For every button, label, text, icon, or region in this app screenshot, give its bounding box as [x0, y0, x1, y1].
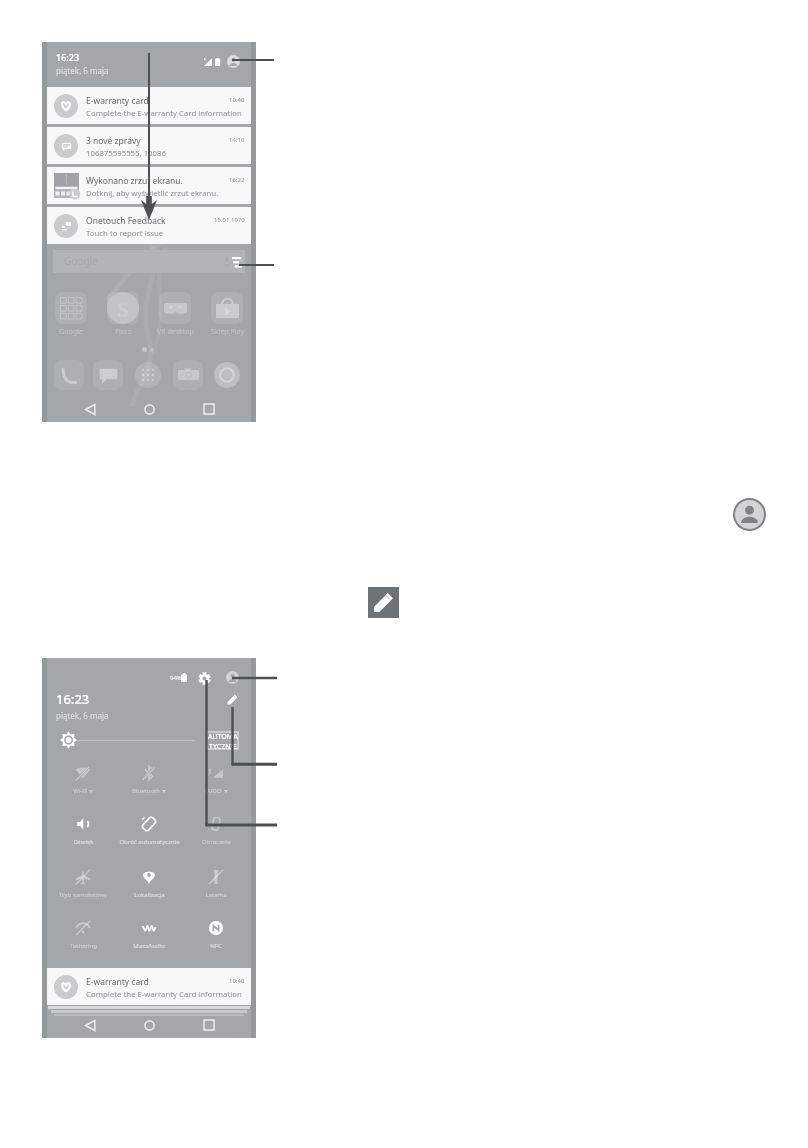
staticText: NFC [210, 942, 222, 950]
staticText: 3 nové zprávy [86, 135, 141, 147]
staticText: 16:22 [229, 176, 245, 184]
button[interactable]: AUTOMA [207, 732, 238, 749]
staticText: S [117, 293, 130, 323]
button[interactable]: Home [136, 1012, 162, 1038]
button[interactable]: S [97, 292, 149, 337]
button[interactable]: Dźwięk [50, 816, 116, 846]
button[interactable]: Lokalizacja [116, 869, 182, 899]
other: Menu [232, 257, 244, 268]
button[interactable]: Google [45, 292, 97, 337]
staticText: 16:23 [56, 51, 80, 63]
staticText: Dotknij, aby wyświetlić zrzut ekranu. [86, 188, 219, 199]
staticText: Onetouch Feedback [86, 215, 166, 227]
button[interactable]: CUDO [183, 765, 249, 795]
staticText: E-warranty card [86, 976, 149, 988]
button[interactable]: Latarka [183, 869, 249, 899]
staticText: piątek, 6 maja [56, 65, 109, 76]
button[interactable] [54, 360, 84, 390]
button[interactable]: Tethering [50, 920, 116, 950]
staticText: CUDO [204, 787, 222, 795]
button[interactable]: Wykonano zrzut ekranu. [47, 167, 251, 204]
button[interactable] [212, 360, 242, 390]
button[interactable] [173, 360, 203, 390]
staticText: piątek, 6 maja [56, 710, 109, 721]
staticText: 16:23 [56, 690, 90, 708]
button[interactable]: Obracanie [183, 816, 249, 846]
button[interactable]: Account avatar [227, 55, 240, 68]
staticText: TYCZNIE [209, 742, 237, 749]
staticText: Bluetooth [132, 787, 160, 795]
staticText: Tethering [70, 942, 97, 950]
button[interactable]: Wi-Fi [50, 765, 116, 795]
button[interactable]: Back [77, 1012, 103, 1038]
staticText: Google [59, 327, 83, 337]
button[interactable]: 3 nové zprávy [47, 127, 251, 164]
staticText: VR desktop [157, 327, 194, 337]
staticText: Obracanie [202, 838, 231, 846]
staticText: 14:16 [229, 136, 245, 144]
staticText: Dźwięk [73, 838, 94, 846]
staticText: Google [64, 254, 98, 268]
staticText: Lokalizacja [134, 891, 165, 899]
button[interactable]: E-warranty card [47, 968, 251, 1005]
button[interactable] [133, 360, 163, 390]
button[interactable]: MaxxAudio [116, 920, 182, 950]
button[interactable]: Account avatar [733, 498, 766, 531]
button[interactable]: Google [53, 250, 245, 273]
staticText: Obróć automatycznie [119, 838, 180, 846]
staticText: 10:40 [229, 977, 245, 985]
staticText: 10:40 [229, 96, 245, 104]
button[interactable]: Account avatar [226, 671, 239, 684]
staticText: 15.01.1970 [214, 216, 245, 224]
button[interactable]: Tryb samolotowy [50, 869, 116, 899]
button[interactable]: Bluetooth [116, 765, 182, 795]
button[interactable]: Obróć automatycznie [116, 816, 182, 846]
button[interactable]: Onetouch Feedback [47, 207, 251, 244]
staticText: Complete the E-warranty Card information [86, 108, 242, 119]
staticText: MaxxAudio [133, 942, 165, 950]
button[interactable]: Settings [197, 671, 211, 685]
staticText: AUTOMA [208, 732, 238, 742]
staticText: Complete the E-warranty Card information [86, 989, 242, 1000]
button[interactable]: Edit [368, 587, 399, 618]
staticText: 106875595555, 10086 [86, 148, 166, 159]
staticText: Wi-Fi [73, 787, 87, 795]
button[interactable] [93, 360, 123, 390]
staticText: Fizzo [115, 327, 132, 337]
button[interactable]: Edit quick settings [227, 694, 238, 705]
staticText: E-warranty card [86, 95, 149, 107]
button[interactable]: Sklep Play [201, 292, 253, 337]
staticText: Latarka [205, 891, 227, 899]
button[interactable]: Home [136, 396, 162, 422]
staticText: Tryb samolotowy [59, 891, 107, 899]
button[interactable]: E-warranty card [47, 87, 251, 124]
staticText: 94% [170, 674, 182, 682]
button[interactable]: Recents [196, 396, 222, 422]
button[interactable]: Recents [196, 1012, 222, 1038]
button[interactable]: VR desktop [149, 292, 201, 337]
button[interactable]: NFC [183, 920, 249, 950]
staticText: Sklep Play [211, 327, 244, 337]
staticText: Touch to report issue [86, 228, 164, 239]
staticText: Wykonano zrzut ekranu. [86, 175, 183, 187]
button[interactable]: Back [77, 396, 103, 422]
